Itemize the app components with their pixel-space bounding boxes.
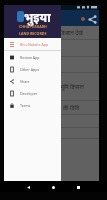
staticText: Bhu-Naksha App bbox=[20, 42, 49, 47]
button[interactable]: Share bbox=[4, 75, 61, 87]
staticText: भुइया bbox=[24, 9, 51, 25]
button[interactable] bbox=[4, 115, 99, 128]
button[interactable]: Bhu-Naksha App bbox=[4, 38, 61, 50]
button[interactable]: Terms bbox=[4, 99, 61, 111]
button[interactable] bbox=[4, 128, 99, 139]
button[interactable] bbox=[4, 40, 99, 57]
staticText: CHHATTISGARH bbox=[19, 24, 47, 29]
button[interactable]: भूमि किसान bbox=[4, 73, 99, 101]
button[interactable]: Back bbox=[23, 182, 33, 192]
staticText: Share bbox=[20, 79, 30, 84]
button[interactable]: Developer bbox=[4, 87, 61, 99]
staticText: भूमि किसान bbox=[60, 83, 84, 90]
button[interactable]: किसान देखें bbox=[4, 26, 99, 40]
button[interactable]: Share bbox=[88, 15, 97, 24]
staticText: Other Apps bbox=[20, 67, 40, 72]
staticText: किसान देखें bbox=[60, 29, 83, 36]
staticText: Terms bbox=[20, 103, 31, 108]
staticText: Review App bbox=[20, 55, 40, 60]
button[interactable] bbox=[4, 57, 99, 73]
button[interactable]: Other Apps bbox=[4, 63, 61, 75]
staticText: LAND RECORDS bbox=[19, 31, 47, 36]
staticText: की विधि bbox=[63, 104, 80, 111]
button[interactable]: Recent apps bbox=[73, 182, 83, 192]
staticText: Developer bbox=[20, 91, 38, 96]
button[interactable]: की विधि bbox=[4, 101, 99, 115]
button[interactable]: Review App bbox=[4, 51, 61, 63]
button[interactable]: Profile bbox=[78, 14, 87, 23]
button[interactable]: Home bbox=[48, 182, 58, 192]
